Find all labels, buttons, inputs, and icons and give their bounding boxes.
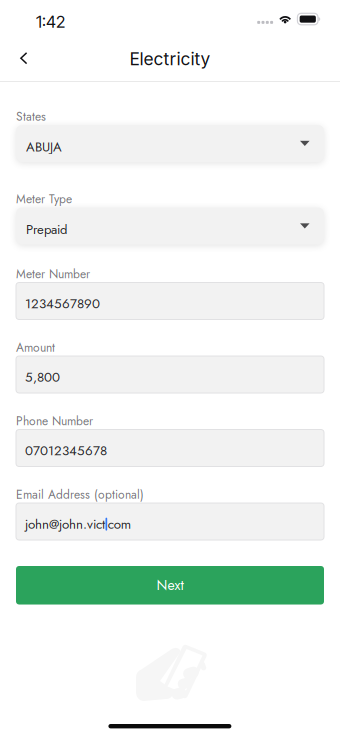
- staticText: 1:42: [36, 11, 65, 32]
- button[interactable]: States: [16, 125, 324, 162]
- staticText: ABUJA: [26, 137, 62, 156]
- staticText: com: [108, 514, 131, 534]
- staticText: Email Address (optional): [16, 486, 144, 503]
- staticText: john@john.vict: [25, 514, 105, 534]
- staticText: Meter Number: [16, 265, 90, 283]
- staticText: Phone Number: [16, 412, 93, 430]
- button[interactable]: Next: [16, 566, 324, 604]
- button[interactable]: Meter Type: [16, 207, 324, 244]
- staticText: Electricity: [129, 48, 210, 69]
- staticText: Meter Type: [16, 190, 72, 208]
- staticText: 5,800: [25, 367, 60, 387]
- staticText: Next: [156, 575, 183, 595]
- staticText: 07012345678: [25, 441, 107, 460]
- staticText: Prepaid: [26, 220, 67, 239]
- staticText: Amount: [16, 339, 55, 356]
- staticText: 1234567890: [25, 294, 100, 313]
- button[interactable]: Back: [8, 38, 40, 79]
- staticText: States: [16, 108, 46, 125]
